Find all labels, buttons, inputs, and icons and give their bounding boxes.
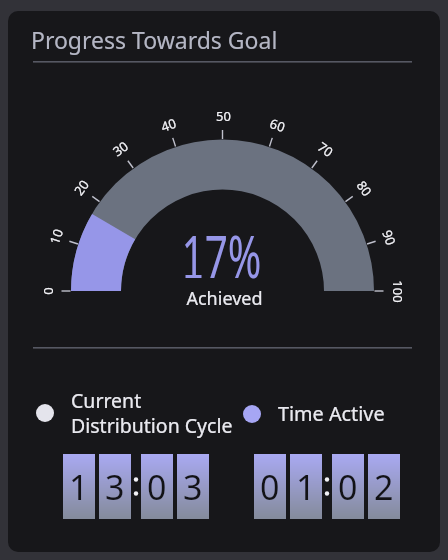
staticText: 0 — [39, 287, 57, 295]
staticText: 50 — [216, 107, 231, 125]
button[interactable]: Time Active — [243, 400, 385, 427]
staticText: 17% — [181, 216, 262, 295]
button[interactable]: 0 — [254, 454, 400, 519]
staticText: 1 — [296, 464, 316, 510]
staticText: 90 — [378, 228, 400, 247]
staticText: 0 — [338, 464, 358, 510]
staticText: 70 — [314, 138, 337, 161]
staticText: Time Active — [278, 400, 385, 427]
staticText: 0 — [260, 464, 280, 510]
staticText: 2 — [374, 464, 394, 510]
staticText: 20 — [70, 176, 93, 199]
staticText: 0 — [147, 464, 167, 510]
staticText: 60 — [268, 114, 287, 136]
button[interactable]: 1 — [63, 454, 209, 519]
staticText: 10 — [45, 227, 67, 246]
staticText: 40 — [159, 114, 178, 136]
staticText: 30 — [109, 137, 132, 160]
staticText: Progress Towards Goal — [31, 24, 278, 55]
staticText: 1 — [69, 464, 89, 510]
staticText: Achieved — [186, 286, 263, 310]
staticText: Current Distribution Cycle — [71, 387, 233, 439]
staticText: 100 — [389, 280, 407, 303]
staticText: 3 — [183, 464, 203, 510]
staticText: 3 — [105, 464, 125, 510]
button[interactable]: Current Distribution Cycle — [36, 387, 233, 439]
staticText: 80 — [353, 177, 376, 200]
